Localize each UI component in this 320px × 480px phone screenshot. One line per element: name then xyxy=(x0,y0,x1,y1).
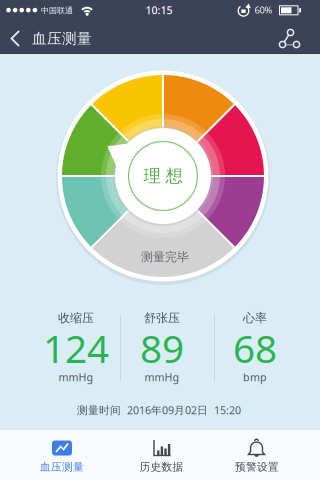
staticText: bmp xyxy=(243,370,267,384)
staticText: 历史数据 xyxy=(139,460,183,473)
staticText: 心率 xyxy=(243,311,267,325)
staticText: 60% xyxy=(254,4,272,16)
staticText: 测量完毕 xyxy=(141,250,189,264)
staticText: 血压测量 xyxy=(40,460,84,473)
staticText: 预警设置 xyxy=(235,460,279,473)
staticText: 舒张压 xyxy=(144,311,180,325)
staticText: 68 xyxy=(233,322,277,374)
staticText: mmHg xyxy=(58,370,93,384)
staticText: 10:15 xyxy=(145,3,172,17)
button[interactable]: 预警设置 xyxy=(208,429,306,480)
button[interactable]: 血压测量 xyxy=(13,429,111,480)
staticText: mmHg xyxy=(144,370,179,384)
button[interactable]: Back xyxy=(0,15,44,59)
staticText: 89 xyxy=(140,322,184,374)
staticText: 测量时间 2016年09月02日 15:20 xyxy=(77,403,241,417)
staticText: 理 想 xyxy=(143,165,182,187)
staticText: 血压测量 xyxy=(32,29,92,47)
button[interactable]: Share xyxy=(268,20,312,58)
staticText: 收缩压 xyxy=(58,311,94,325)
staticText: 124 xyxy=(43,322,109,374)
button[interactable]: 历史数据 xyxy=(112,429,210,480)
staticText: 中国联通 xyxy=(41,6,73,15)
